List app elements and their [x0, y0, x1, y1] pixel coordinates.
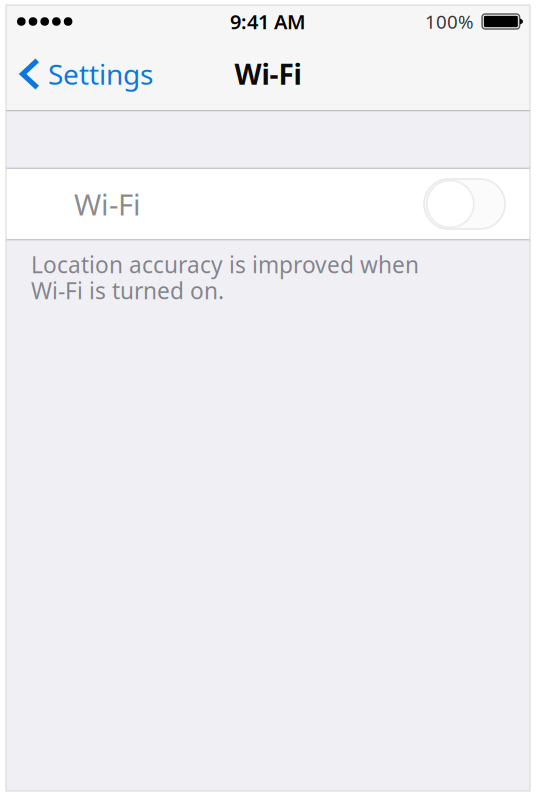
staticText: Settings: [48, 55, 153, 93]
button[interactable]: Wi-Fi: [6, 169, 530, 239]
staticText: Wi-Fi: [234, 55, 301, 93]
button[interactable]: Wi-Fi, off: [424, 179, 505, 229]
staticText: Wi-Fi: [74, 184, 141, 223]
button[interactable]: Settings: [6, 38, 163, 110]
staticText: Location accuracy is improved when: [31, 249, 419, 279]
staticText: 100%: [425, 9, 474, 34]
staticText: Wi-Fi is turned on.: [31, 275, 224, 306]
staticText: 9:41 AM: [230, 8, 306, 35]
